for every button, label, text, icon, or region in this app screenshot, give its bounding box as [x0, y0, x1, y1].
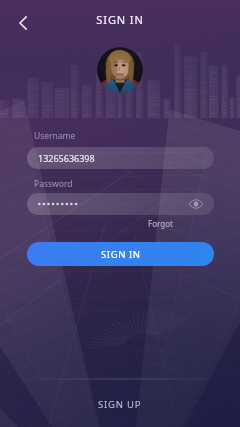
button[interactable]: Show password — [188, 197, 204, 211]
button[interactable]: 13265636398 — [27, 147, 214, 169]
button[interactable]: Back — [8, 8, 38, 38]
button[interactable]: Forgot Password? — [148, 218, 214, 231]
button[interactable]: Profile photo — [97, 47, 143, 93]
button[interactable]: SIGN UP — [0, 394, 240, 414]
staticText: Forgot Password? — [148, 218, 214, 231]
button[interactable]: Show password — [27, 193, 214, 215]
staticText: 13265636398 — [38, 152, 95, 164]
button[interactable]: SIGN IN — [27, 242, 214, 266]
staticText: SIGN IN — [101, 248, 141, 261]
staticText: Username — [34, 130, 76, 142]
staticText: Password — [34, 178, 73, 190]
staticText: SIGN IN — [0, 12, 240, 427]
staticText: SIGN UP — [98, 398, 142, 411]
